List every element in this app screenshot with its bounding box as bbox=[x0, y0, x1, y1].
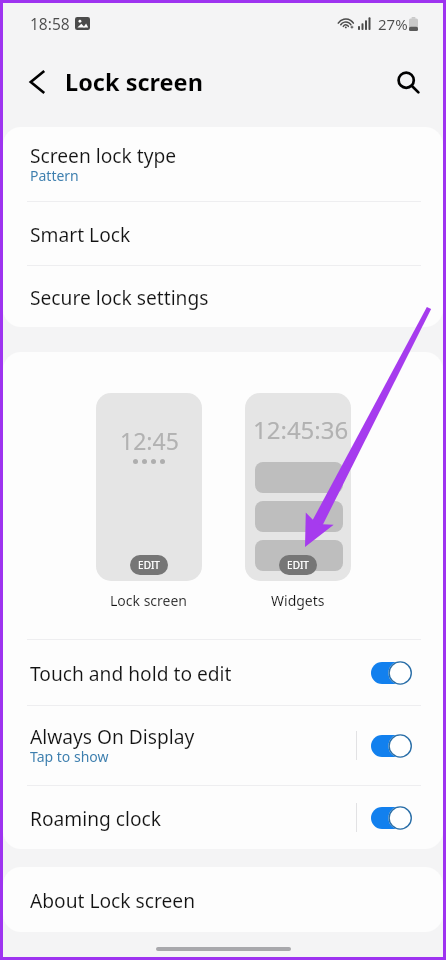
button[interactable]: Secure lock settings bbox=[3, 266, 443, 327]
button[interactable]: Toggle bbox=[371, 661, 415, 685]
button[interactable]: Screen lock type bbox=[3, 127, 443, 201]
button[interactable]: Back bbox=[22, 67, 52, 97]
staticText: 18:58 bbox=[30, 13, 70, 34]
button[interactable]: 12:45 bbox=[96, 393, 202, 581]
staticText: Always On Display bbox=[30, 723, 195, 749]
staticText: Tap to show bbox=[30, 747, 109, 766]
staticText: Lock screen bbox=[110, 591, 188, 610]
staticText: Lock screen bbox=[65, 66, 203, 98]
staticText: EDIT bbox=[138, 558, 160, 572]
button[interactable]: About Lock screen bbox=[3, 867, 443, 932]
button[interactable]: Search bbox=[391, 65, 425, 99]
staticText: Pattern bbox=[30, 166, 79, 185]
staticText: Secure lock settings bbox=[30, 284, 209, 310]
staticText: 27% bbox=[378, 14, 408, 34]
staticText: Smart Lock bbox=[30, 221, 131, 247]
button[interactable]: Roaming clock bbox=[3, 786, 443, 849]
staticText: Touch and hold to edit bbox=[30, 660, 232, 686]
button[interactable]: Toggle bbox=[371, 734, 415, 758]
button[interactable]: Smart Lock bbox=[3, 202, 443, 265]
staticText: 12:45 bbox=[120, 425, 179, 456]
staticText: Widgets bbox=[271, 591, 325, 610]
button[interactable]: Touch and hold to edit bbox=[3, 640, 443, 705]
staticText: Screen lock type bbox=[30, 142, 177, 168]
staticText: EDIT bbox=[287, 558, 309, 572]
button[interactable]: Always On Display bbox=[3, 706, 443, 785]
button[interactable]: 12:45:36 bbox=[245, 393, 351, 581]
staticText: 12:45:36 bbox=[253, 413, 351, 446]
button[interactable]: Toggle bbox=[371, 806, 415, 830]
staticText: About Lock screen bbox=[30, 887, 195, 913]
staticText: Roaming clock bbox=[30, 805, 162, 831]
